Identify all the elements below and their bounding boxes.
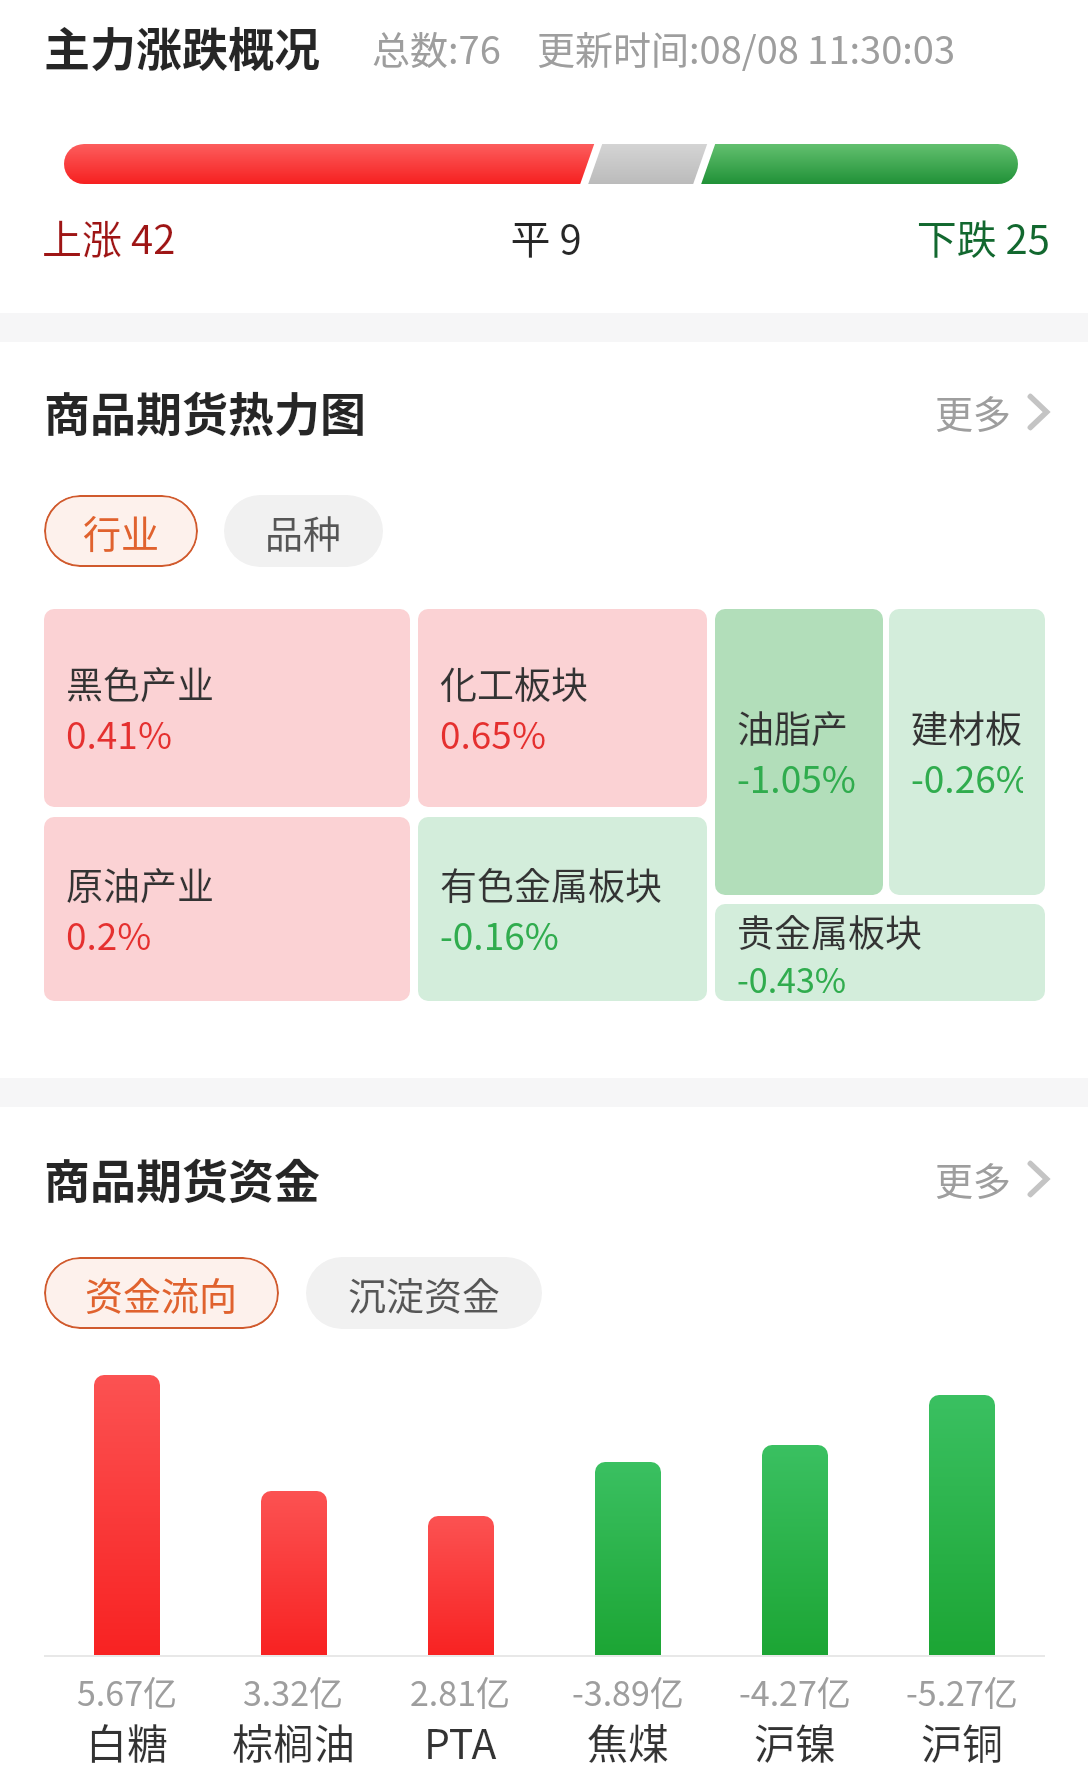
button[interactable]: 沉淀资金: [306, 1257, 542, 1329]
button[interactable]: 棕榈油: [210, 1375, 377, 1655]
other: More: [1026, 1161, 1050, 1197]
button[interactable]: 原油产业: [44, 817, 410, 1001]
staticText: 5.67亿: [77, 1667, 178, 1716]
staticText: 0.65%: [440, 706, 546, 756]
staticText: 商品期货热力图: [44, 378, 366, 445]
staticText: 主力涨跌概况: [44, 13, 320, 80]
staticText: 2.81亿: [410, 1667, 511, 1716]
staticText: 资金流向: [85, 1266, 238, 1321]
button[interactable]: 有色金属板块: [418, 817, 707, 1001]
button[interactable]: 行业: [44, 495, 198, 567]
staticText: 油脂产: [737, 700, 848, 754]
staticText: 3.32亿: [243, 1667, 344, 1716]
staticText: 品种: [265, 504, 342, 559]
staticText: 更新时间:08/08 11:30:03: [537, 20, 956, 75]
staticText: 焦煤: [587, 1711, 669, 1770]
button[interactable]: 资金流向: [44, 1257, 279, 1329]
staticText: 贵金属板块: [737, 904, 922, 958]
staticText: -0.26%: [911, 750, 1023, 800]
staticText: 商品期货资金: [44, 1145, 320, 1212]
staticText: -5.27亿: [906, 1667, 1018, 1716]
button[interactable]: 更多: [935, 384, 1050, 439]
staticText: 建材板: [911, 700, 1022, 754]
button[interactable]: 品种: [224, 495, 383, 567]
staticText: 更多: [935, 384, 1012, 439]
staticText: -0.16%: [440, 907, 559, 957]
button[interactable]: 黑色产业: [44, 609, 410, 807]
staticText: 沉淀资金: [348, 1266, 501, 1321]
staticText: PTA: [424, 1711, 497, 1770]
staticText: 棕榈油: [232, 1711, 355, 1770]
staticText: 有色金属板块: [440, 857, 662, 911]
staticText: -4.27亿: [739, 1667, 851, 1716]
other: More: [1026, 394, 1050, 430]
button[interactable]: 焦煤: [544, 1375, 711, 1655]
button[interactable]: 化工板块: [418, 609, 707, 807]
staticText: 0.2%: [66, 907, 152, 957]
staticText: 原油产业: [66, 857, 214, 911]
button[interactable]: 沪镍: [711, 1375, 878, 1655]
staticText: 沪铜: [921, 1711, 1003, 1770]
staticText: 上涨 42: [42, 208, 378, 266]
staticText: 白糖: [86, 1711, 168, 1770]
button[interactable]: 白糖: [44, 1375, 210, 1655]
staticText: 0.41%: [66, 706, 172, 756]
button[interactable]: PTA: [377, 1375, 544, 1655]
staticText: -3.89亿: [572, 1667, 684, 1716]
button[interactable]: 油脂产: [715, 609, 883, 895]
staticText: 沪镍: [754, 1711, 836, 1770]
button[interactable]: 建材板: [889, 609, 1045, 895]
staticText: -1.05%: [737, 750, 856, 800]
staticText: 化工板块: [440, 656, 588, 710]
button[interactable]: 更多: [935, 1151, 1050, 1206]
staticText: 总数:76: [372, 20, 501, 75]
staticText: 下跌 25: [714, 208, 1050, 266]
staticText: -0.43%: [737, 954, 847, 997]
staticText: 更多: [935, 1151, 1012, 1206]
staticText: 行业: [83, 504, 160, 559]
staticText: 平 9: [378, 208, 714, 266]
button[interactable]: 贵金属板块: [715, 904, 1045, 1001]
staticText: 黑色产业: [66, 656, 214, 710]
button[interactable]: 沪铜: [878, 1375, 1045, 1655]
